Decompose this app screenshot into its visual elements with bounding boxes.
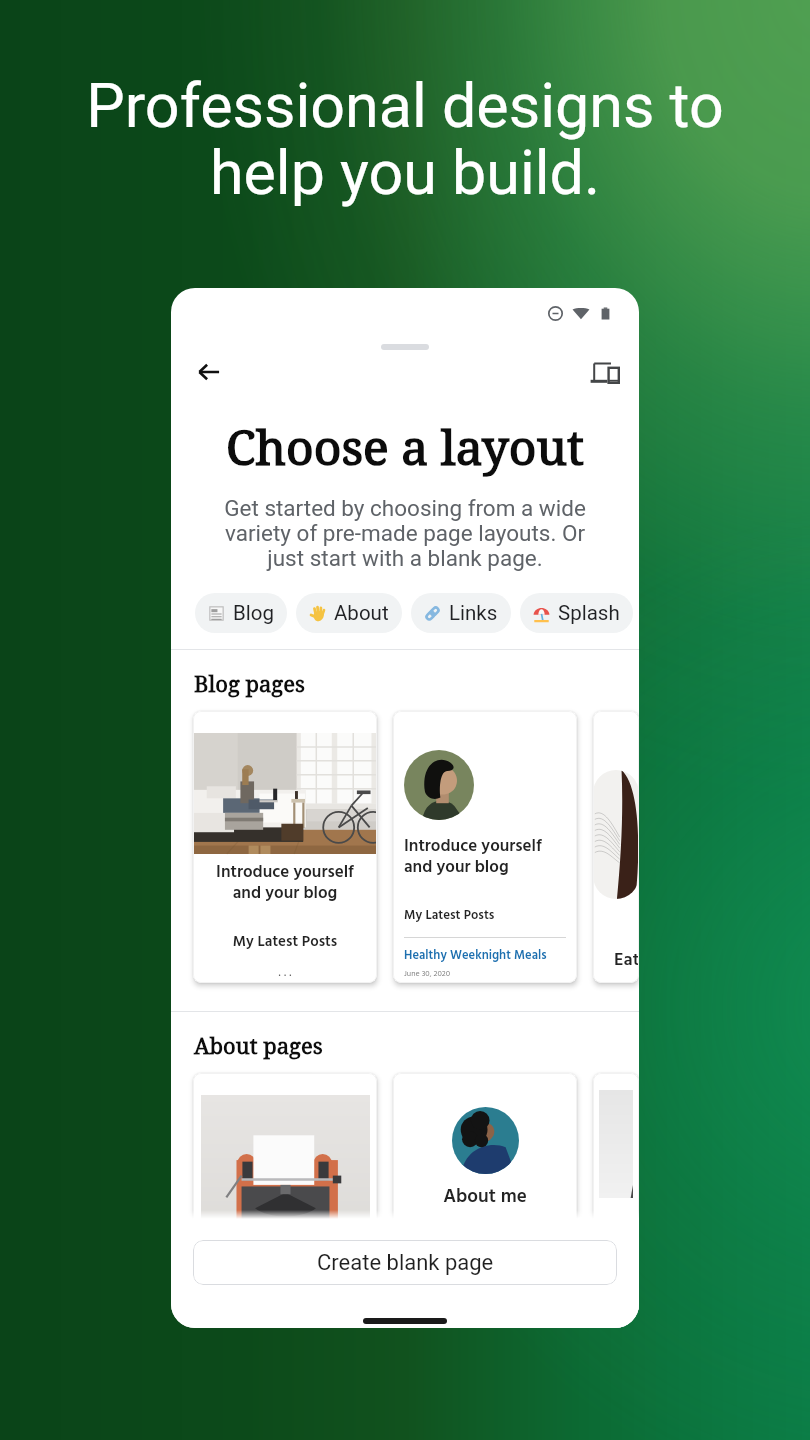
staticText: Healthy Weeknight Meals xyxy=(404,946,547,966)
button[interactable]: Links xyxy=(411,593,511,633)
button[interactable]: Splash xyxy=(520,593,633,633)
staticText: My Latest Posts xyxy=(404,905,495,926)
staticText: Create blank page xyxy=(317,1250,494,1276)
staticText: Professional designs to help you build. xyxy=(86,70,724,209)
button[interactable]: Introduce yourself and your blog xyxy=(393,711,577,983)
staticText: . . . xyxy=(193,962,377,983)
button[interactable]: Create blank page xyxy=(193,1240,617,1285)
button[interactable]: About me xyxy=(393,1073,577,1328)
staticText: Get started by choosing from a wide vari… xyxy=(171,495,639,571)
button[interactable]: Back xyxy=(185,348,233,396)
staticText: Links xyxy=(449,601,498,625)
staticText: Introduce yourself and your blog xyxy=(193,859,377,908)
staticText: Introduce yourself and your blog xyxy=(404,833,542,882)
staticText: About pages xyxy=(194,1030,323,1060)
staticText: Hello! xyxy=(193,1264,377,1290)
button[interactable]: Introduce yourself and your blog xyxy=(193,711,377,983)
button[interactable]: Hello! xyxy=(193,1073,377,1328)
staticText: My Latest Posts xyxy=(193,930,377,954)
staticText: About me xyxy=(393,1182,577,1212)
staticText: Blog xyxy=(233,601,274,625)
staticText: About xyxy=(334,601,389,625)
staticText: Eating well xyxy=(614,946,639,975)
staticText: Blog pages xyxy=(194,668,305,698)
button[interactable]: About xyxy=(296,593,402,633)
staticText: June 30, 2020 xyxy=(404,968,451,981)
staticText: Choose a layout xyxy=(171,414,639,479)
button[interactable]: Preview on devices xyxy=(581,348,629,396)
staticText: Splash xyxy=(558,601,620,625)
button[interactable] xyxy=(593,1073,639,1328)
button[interactable]: Blog xyxy=(195,593,287,633)
button[interactable]: Eating well xyxy=(593,711,639,983)
